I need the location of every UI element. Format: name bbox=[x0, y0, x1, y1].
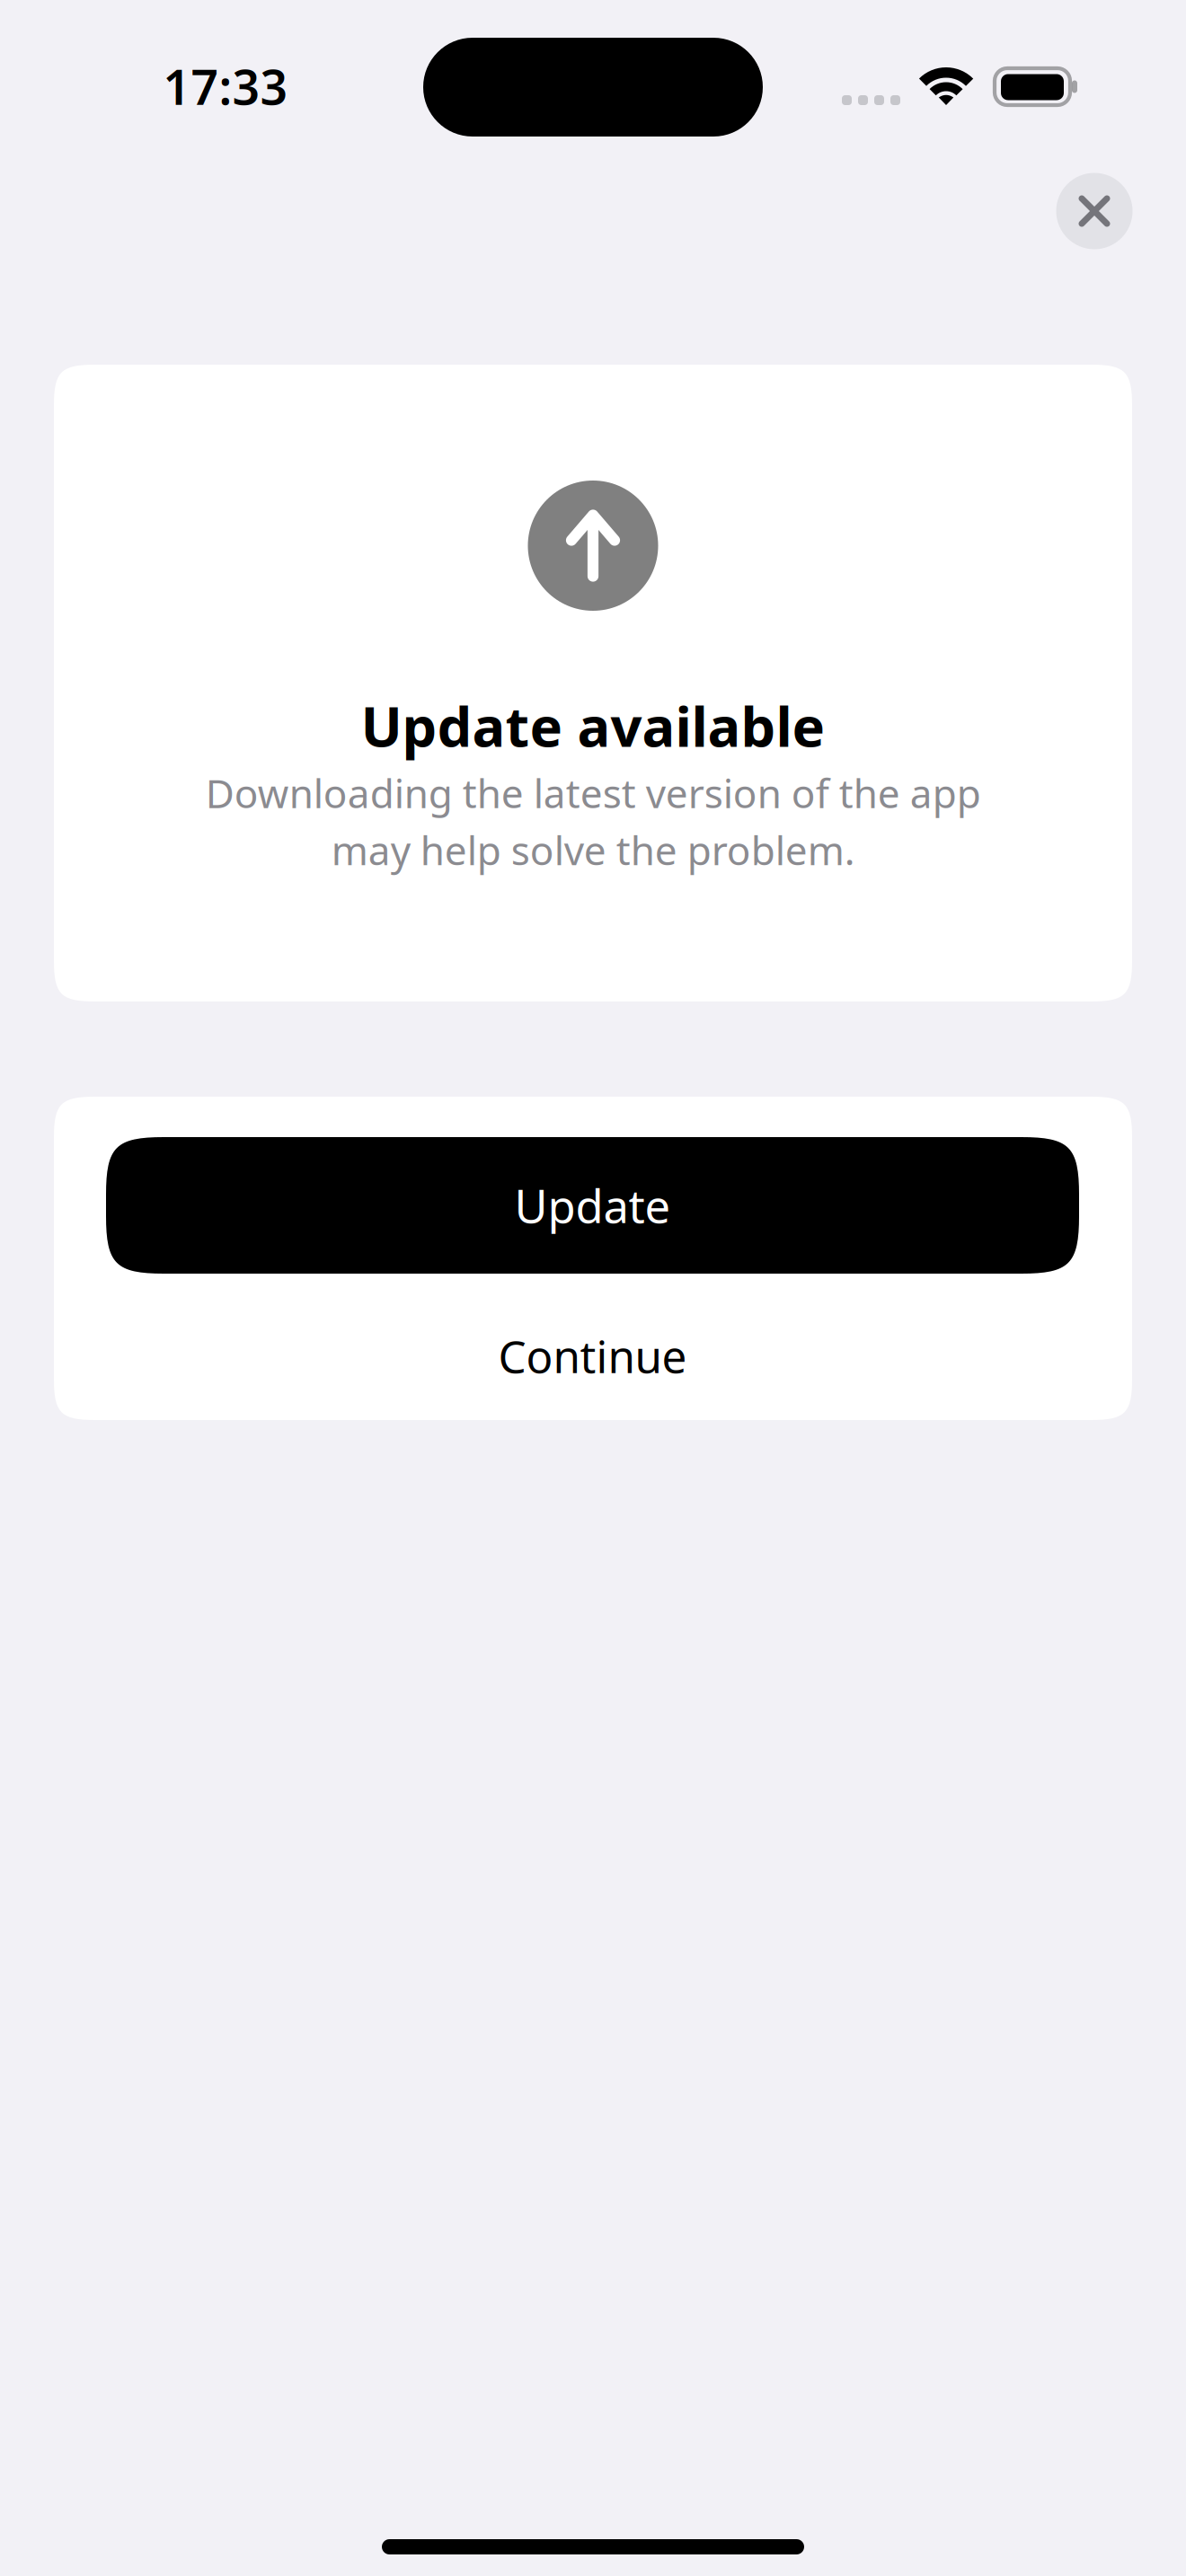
button[interactable]: Update bbox=[106, 1137, 1079, 1274]
staticText: Update available bbox=[361, 689, 825, 762]
staticText: Downloading the latest version of the ap… bbox=[205, 767, 981, 876]
button[interactable]: Close bbox=[1051, 168, 1137, 254]
staticText: Continue bbox=[498, 1326, 687, 1385]
staticText: Update bbox=[514, 1175, 671, 1236]
staticText: 17:33 bbox=[163, 54, 288, 118]
button[interactable]: Continue bbox=[109, 1300, 1076, 1412]
